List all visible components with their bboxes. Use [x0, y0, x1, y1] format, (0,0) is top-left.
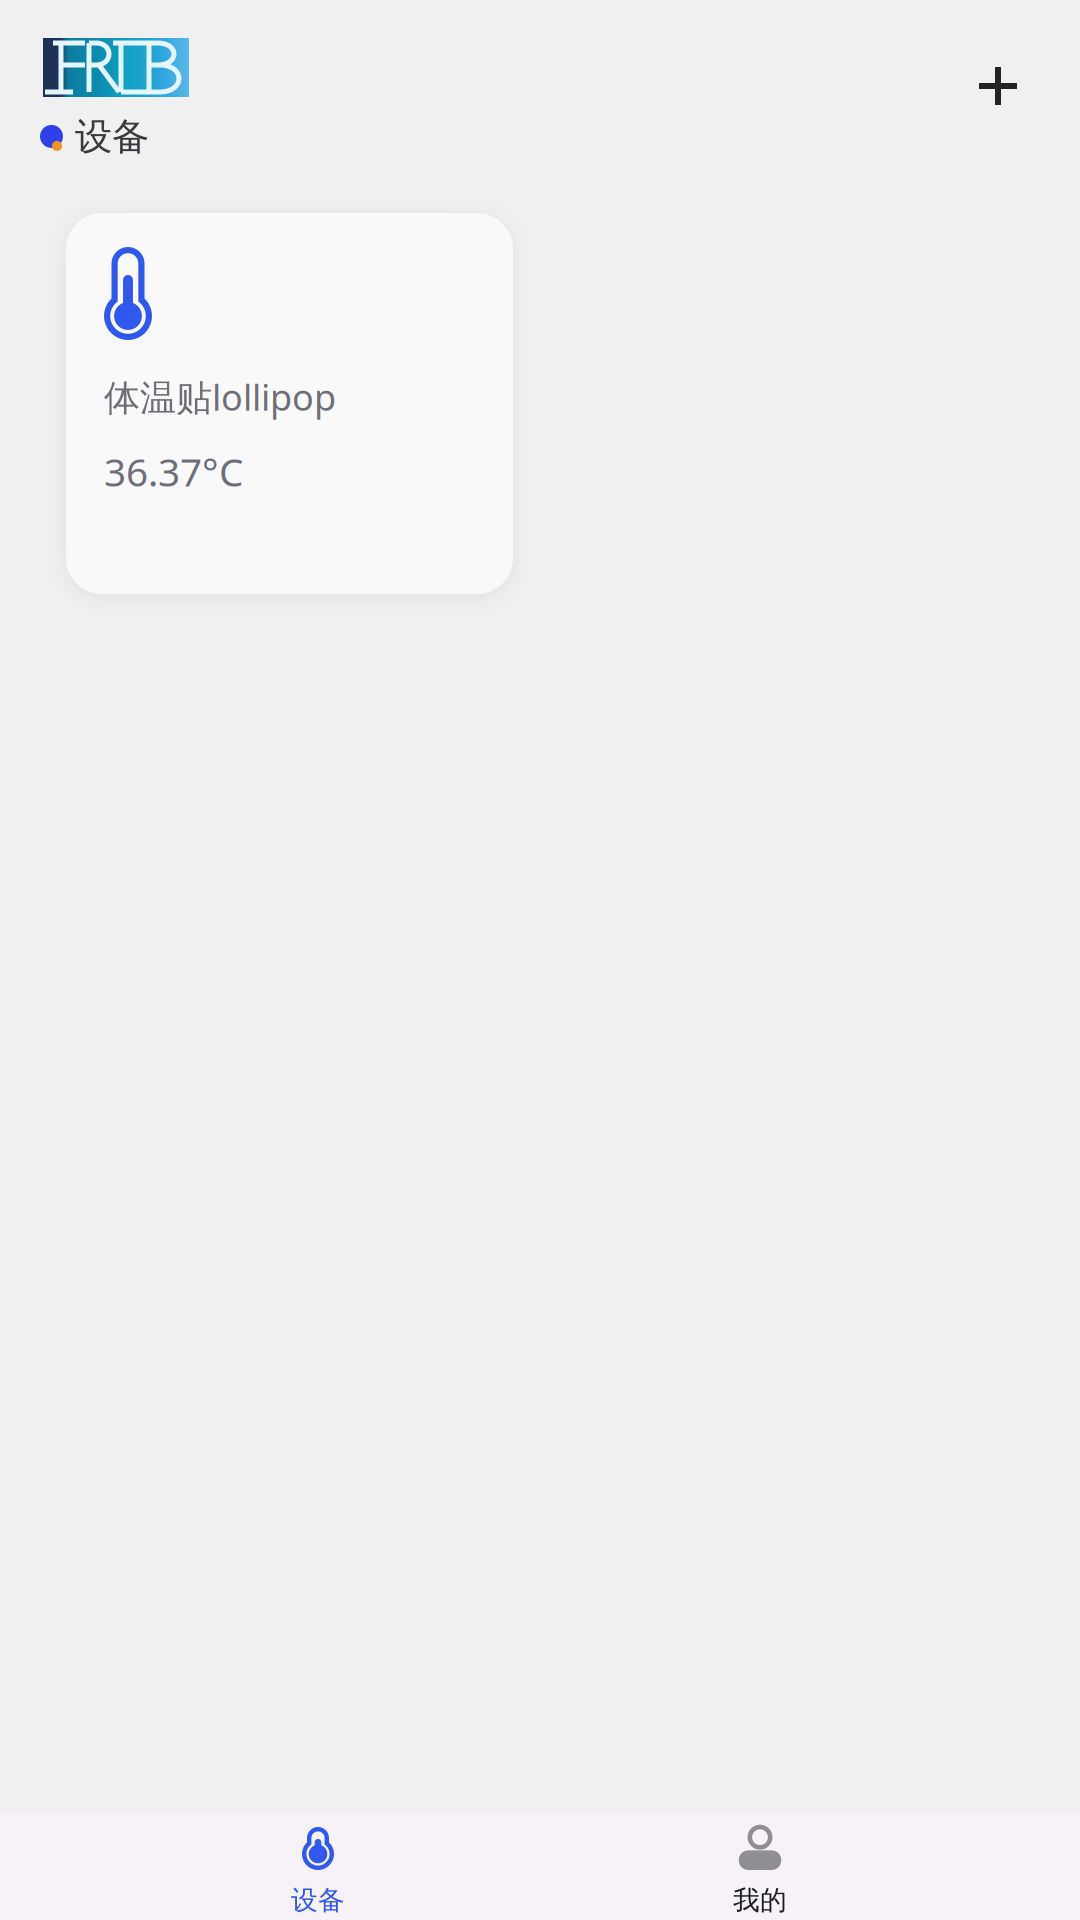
staticText: 设备: [75, 114, 149, 160]
button[interactable]: Add device: [948, 36, 1080, 136]
button[interactable]: 设备: [0, 1813, 539, 1920]
staticText: 我的: [733, 1884, 787, 1917]
staticText: 36.37°C: [104, 446, 243, 497]
staticText: 设备: [291, 1884, 345, 1917]
button[interactable]: 体温贴lollipop: [66, 213, 513, 594]
button[interactable]: 我的: [539, 1813, 1080, 1920]
staticText: 体温贴lollipop: [104, 373, 336, 421]
